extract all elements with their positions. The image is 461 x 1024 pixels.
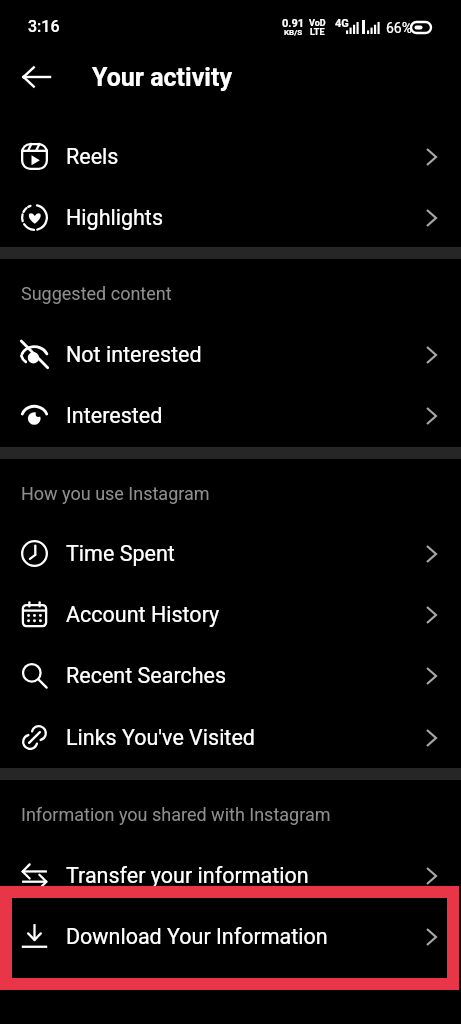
- staticText: Recent Searches: [66, 663, 227, 688]
- button[interactable]: Back: [8, 49, 64, 105]
- staticText: 66%: [386, 20, 412, 36]
- staticText: 3:16: [28, 17, 60, 36]
- staticText: Not interested: [66, 342, 202, 367]
- button[interactable]: Recent Searches: [0, 645, 461, 706]
- staticText: How you use Instagram: [21, 483, 210, 504]
- staticText: Account History: [66, 602, 220, 627]
- button[interactable]: Account History: [0, 584, 461, 645]
- staticText: VoD: [309, 18, 326, 29]
- staticText: LTE: [310, 27, 325, 38]
- button[interactable]: Not interested: [0, 324, 461, 385]
- staticText: Download Your Information: [66, 924, 328, 949]
- staticText: Reels: [66, 144, 119, 169]
- staticText: Highlights: [66, 205, 163, 230]
- staticText: Interested: [66, 403, 163, 428]
- button[interactable]: Transfer your information: [0, 845, 461, 906]
- button[interactable]: Reels: [0, 126, 461, 187]
- staticText: Information you shared with Instagram: [21, 804, 331, 825]
- staticText: KB/S: [284, 28, 303, 37]
- button[interactable]: Interested: [0, 385, 461, 446]
- button[interactable]: Download Your Information: [0, 906, 461, 967]
- button[interactable]: Links You've Visited: [0, 707, 461, 768]
- staticText: 4G: [335, 17, 349, 30]
- staticText: Links You've Visited: [66, 725, 255, 750]
- button[interactable]: Time Spent: [0, 523, 461, 584]
- staticText: 0.91: [282, 17, 305, 30]
- button[interactable]: Highlights: [0, 187, 461, 248]
- staticText: Time Spent: [66, 541, 175, 566]
- staticText: Transfer your information: [66, 863, 309, 888]
- staticText: Suggested content: [21, 283, 172, 304]
- staticText: Your activity: [92, 63, 232, 92]
